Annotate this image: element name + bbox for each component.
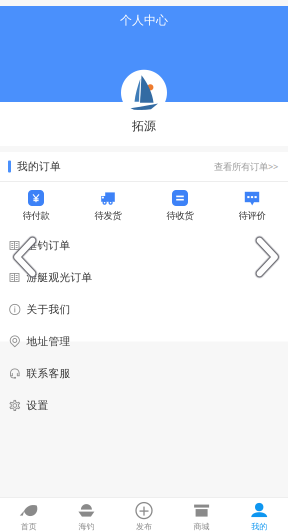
staticText: 设置 bbox=[26, 399, 48, 412]
staticText: 地址管理 bbox=[26, 335, 70, 348]
staticText: 待付款 bbox=[22, 210, 49, 221]
staticText: 待收货 bbox=[166, 210, 193, 221]
staticText: 联系客服 bbox=[26, 367, 70, 380]
button[interactable]: 海钓 bbox=[58, 498, 115, 531]
button[interactable]: 联系客服 bbox=[0, 357, 288, 389]
staticText: 查看所有订单>> bbox=[214, 160, 278, 173]
staticText: 我的 bbox=[251, 522, 267, 531]
staticText: 垂钓订单 bbox=[26, 239, 70, 252]
button[interactable]: 首页 bbox=[0, 498, 58, 531]
button[interactable]: 待发货 bbox=[72, 190, 144, 221]
button[interactable]: 关于我们 bbox=[0, 293, 288, 325]
button[interactable]: 查看所有订单>> bbox=[214, 160, 288, 173]
button[interactable]: 我的 bbox=[230, 498, 288, 531]
button[interactable]: 设置 bbox=[0, 389, 288, 421]
button[interactable]: 商城 bbox=[173, 498, 230, 531]
staticText: 海钓 bbox=[78, 522, 94, 531]
staticText: 待评价 bbox=[238, 210, 265, 221]
button[interactable]: 游艇观光订单 bbox=[0, 261, 288, 293]
button[interactable]: Next bbox=[255, 236, 279, 278]
button[interactable]: 发布 bbox=[115, 498, 173, 531]
button[interactable]: 垂钓订单 bbox=[0, 229, 288, 261]
button[interactable]: Previous bbox=[13, 236, 37, 278]
staticText: 游艇观光订单 bbox=[26, 271, 92, 284]
staticText: 个人中心 bbox=[120, 13, 168, 28]
staticText: 首页 bbox=[21, 522, 37, 531]
staticText: 待发货 bbox=[94, 210, 121, 221]
staticText: 商城 bbox=[194, 522, 210, 531]
staticText: 发布 bbox=[136, 522, 152, 531]
button[interactable]: 待收货 bbox=[144, 190, 216, 221]
button[interactable]: 地址管理 bbox=[0, 325, 288, 357]
staticText: 关于我们 bbox=[26, 303, 70, 316]
staticText: 拓源 bbox=[132, 119, 156, 133]
staticText: 我的订单 bbox=[17, 160, 61, 173]
button[interactable]: 待付款 bbox=[0, 190, 72, 221]
button[interactable]: 待评价 bbox=[216, 190, 288, 221]
